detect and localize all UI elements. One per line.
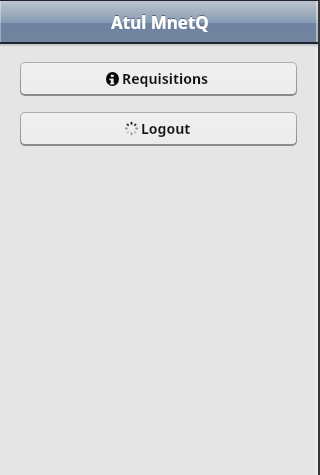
staticText: Atul MnetQ xyxy=(111,10,209,33)
staticText: Atul MnetQ xyxy=(111,11,209,34)
button[interactable]: Requisitions xyxy=(21,63,296,94)
staticText: Requisitions xyxy=(122,69,209,88)
button[interactable]: Logout xyxy=(21,113,296,144)
staticText: Logout xyxy=(141,119,191,138)
